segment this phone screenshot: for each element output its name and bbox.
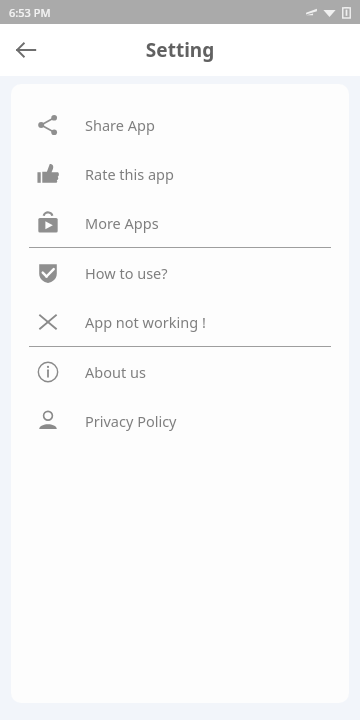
- button[interactable]: Share App: [11, 100, 349, 149]
- staticText: Rate this app: [85, 164, 174, 184]
- button[interactable]: Back: [6, 30, 46, 70]
- staticText: App not working !: [85, 312, 206, 332]
- staticText: Privacy Policy: [85, 411, 177, 431]
- staticText: Setting: [0, 37, 360, 63]
- staticText: About us: [85, 362, 146, 382]
- button[interactable]: More Apps: [11, 198, 349, 247]
- staticText: Share App: [85, 115, 155, 135]
- button[interactable]: App not working !: [11, 297, 349, 346]
- button[interactable]: How to use?: [11, 248, 349, 297]
- button[interactable]: Privacy Policy: [11, 396, 349, 445]
- staticText: 6:53 PM: [9, 5, 51, 20]
- button[interactable]: About us: [11, 347, 349, 396]
- button[interactable]: Rate this app: [11, 149, 349, 198]
- staticText: How to use?: [85, 263, 168, 283]
- staticText: More Apps: [85, 213, 159, 233]
